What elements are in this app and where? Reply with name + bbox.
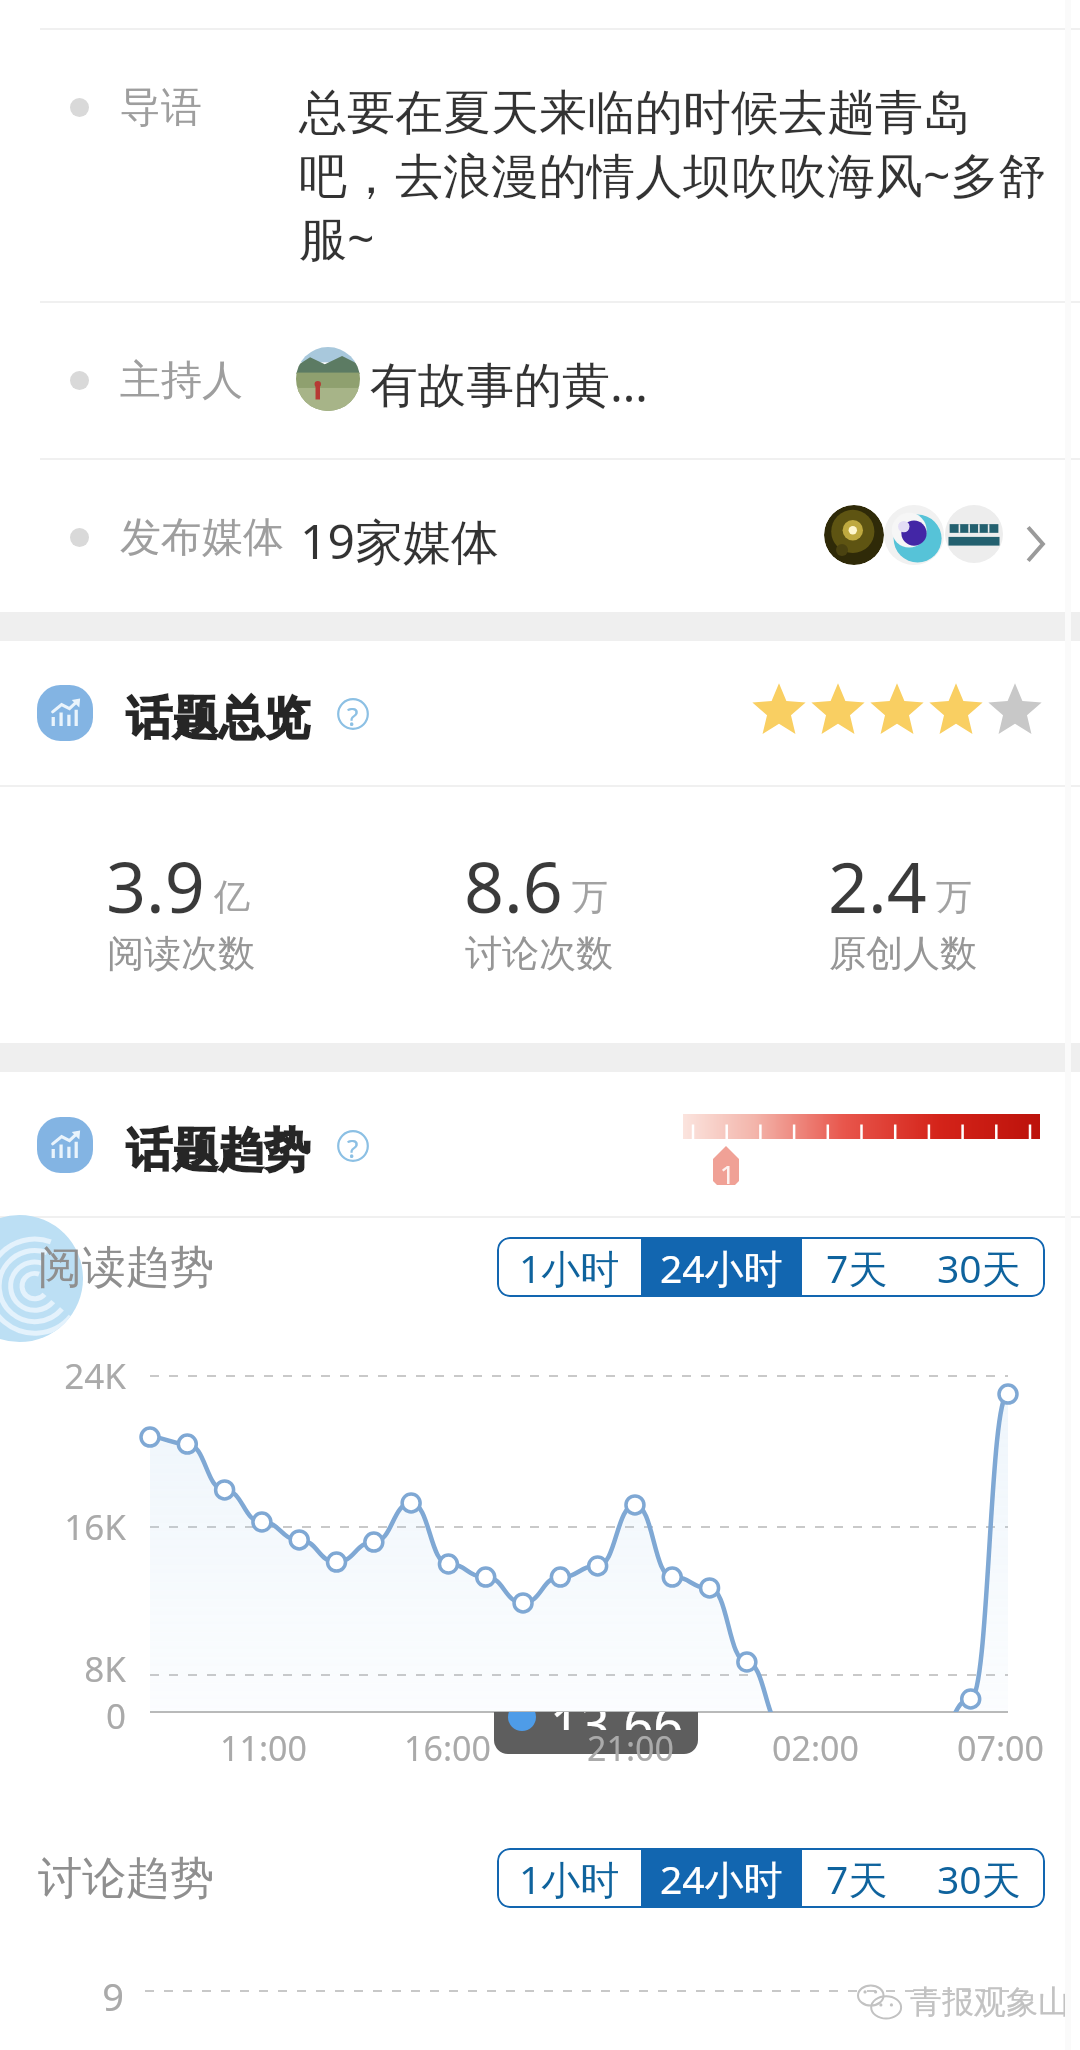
staticText: 导语 <box>120 82 202 134</box>
staticText: 发布媒体 <box>120 512 284 564</box>
staticText: 亿 <box>214 874 250 919</box>
staticText: 24小时 <box>660 1241 783 1294</box>
staticText: 1小时 <box>519 1852 620 1905</box>
button[interactable]: More media <box>1014 515 1056 573</box>
staticText: 7天 <box>826 1852 888 1905</box>
button[interactable]: 7天 <box>802 1237 912 1297</box>
staticText: 24K <box>64 1352 126 1400</box>
button[interactable]: 话题总览 <box>0 641 1080 791</box>
staticText: 7天 <box>826 1241 888 1294</box>
staticText: 万 <box>936 874 972 919</box>
staticText: 3.9 <box>106 838 205 933</box>
staticText: 主持人 <box>120 355 243 407</box>
staticText: 24小时 <box>660 1852 783 1905</box>
staticText: 0 <box>105 1692 126 1740</box>
button[interactable]: 发布媒体 <box>0 460 1080 612</box>
staticText: ? <box>347 1130 359 1162</box>
button[interactable]: 1小时 <box>497 1848 641 1908</box>
staticText: 16K <box>64 1503 126 1551</box>
staticText: 阅读趋势 <box>38 1240 214 1295</box>
staticText: 30天 <box>937 1852 1021 1905</box>
staticText: 阅读次数 <box>107 930 255 977</box>
staticText: 13,662 <box>550 1712 698 1730</box>
staticText: 总要在夏天来临的时候去趟青岛吧，去浪漫的情人坝吹吹海风~多舒服~ <box>299 83 1059 270</box>
button[interactable]: 1小时 <box>497 1237 641 1297</box>
staticText: 8.6 <box>464 838 563 933</box>
staticText: 青报观象山 <box>910 1982 1070 2022</box>
staticText: 02:00 <box>772 1725 859 1771</box>
staticText: 21:00 <box>587 1725 674 1771</box>
staticText: 1 <box>720 1156 735 1191</box>
button[interactable]: Help <box>337 1130 369 1162</box>
staticText: 万 <box>572 874 608 919</box>
staticText: 16:00 <box>404 1725 491 1771</box>
staticText: 2.4 <box>828 838 927 933</box>
staticText: 11:00 <box>220 1725 307 1771</box>
button[interactable]: Help <box>337 698 369 730</box>
button[interactable]: 30天 <box>912 1848 1045 1908</box>
staticText: 原创人数 <box>829 930 977 977</box>
staticText: 07:00 <box>957 1725 1044 1771</box>
staticText: 话题总览 <box>126 690 310 748</box>
staticText: ? <box>347 698 359 730</box>
button[interactable]: 30天 <box>912 1237 1045 1297</box>
staticText: 话题趋势 <box>126 1122 310 1180</box>
staticText: 讨论趋势 <box>38 1851 214 1906</box>
staticText: 19家媒体 <box>300 508 499 574</box>
button[interactable]: 话题趋势 <box>0 1072 1080 1218</box>
button[interactable]: 7天 <box>802 1848 912 1908</box>
staticText: 30天 <box>937 1241 1021 1294</box>
button[interactable]: 24小时 <box>641 1848 802 1908</box>
button[interactable]: 主持人 <box>0 303 1080 458</box>
staticText: 9 <box>102 1970 124 2022</box>
staticText: 8K <box>84 1645 126 1693</box>
staticText: 讨论次数 <box>465 930 613 977</box>
staticText: 有故事的黄… <box>370 351 648 417</box>
button[interactable]: 24小时 <box>641 1237 802 1297</box>
button[interactable]: 导语 <box>0 30 1080 300</box>
staticText: 1小时 <box>519 1241 620 1294</box>
